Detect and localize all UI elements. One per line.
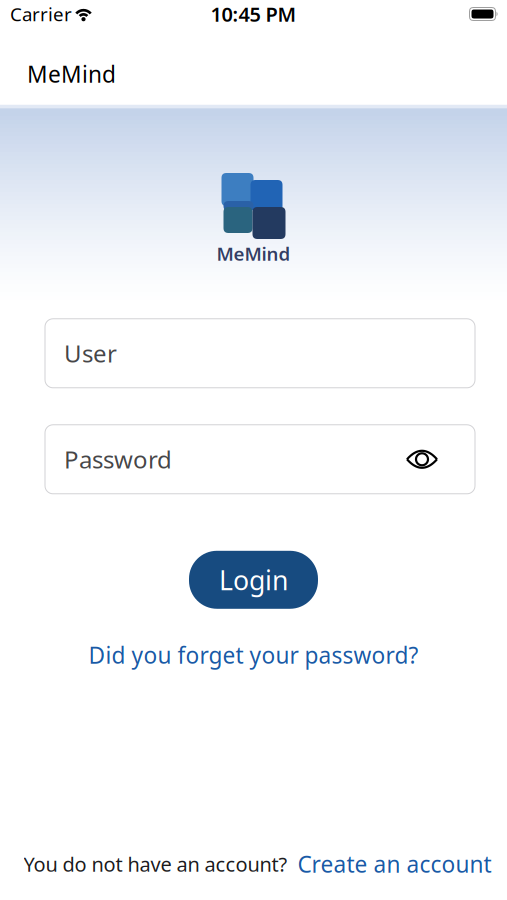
staticText: Password xyxy=(64,443,172,475)
staticText: MeMind xyxy=(27,59,116,89)
button[interactable]: Login xyxy=(189,551,318,609)
button[interactable]: Create an account xyxy=(297,849,491,879)
button[interactable]: User xyxy=(0,319,507,388)
staticText: Login xyxy=(219,562,288,597)
staticText: You do not have an account? xyxy=(23,851,287,877)
button[interactable]: Password xyxy=(0,425,507,494)
staticText: 10:45 PM xyxy=(210,1,296,27)
button[interactable]: Did you forget your password? xyxy=(88,640,418,670)
staticText: Did you forget your password? xyxy=(88,640,418,670)
staticText: MeMind xyxy=(216,241,290,266)
staticText: User xyxy=(64,337,117,369)
staticText: Carrier xyxy=(10,2,72,26)
staticText: Create an account xyxy=(297,849,491,879)
